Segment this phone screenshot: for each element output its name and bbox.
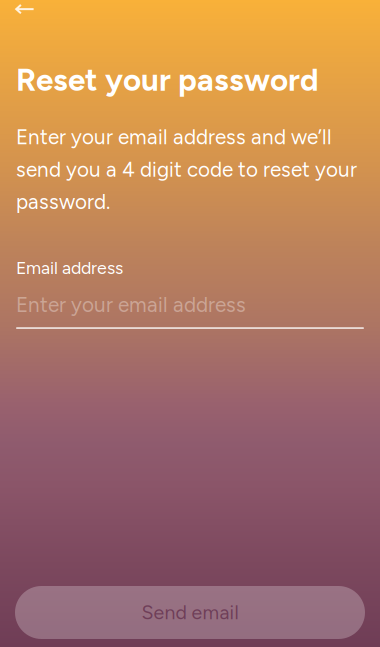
- button[interactable]: Back: [0, 0, 62, 22]
- staticText: Enter your email address: [16, 292, 246, 317]
- button[interactable]: Send email: [15, 586, 365, 639]
- staticText: Enter your email address and we’ll send …: [16, 125, 357, 214]
- button[interactable]: Email address field: [0, 278, 364, 329]
- staticText: Reset your password: [16, 61, 319, 99]
- staticText: Email address: [16, 257, 123, 278]
- staticText: Send email: [141, 601, 238, 624]
